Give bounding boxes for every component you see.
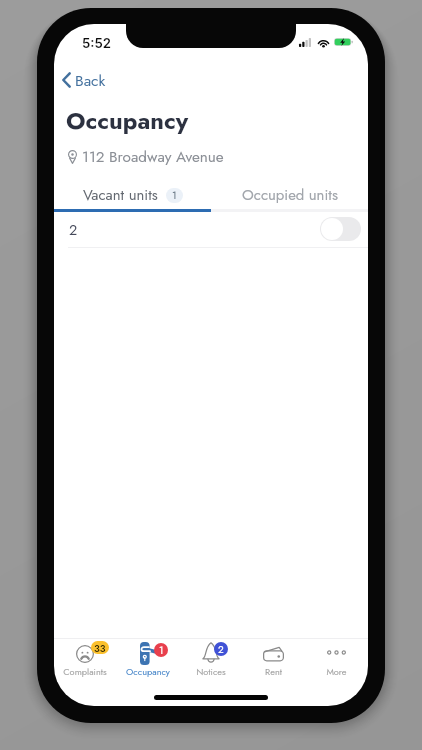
button[interactable]: More	[305, 639, 368, 683]
staticText: Vacant units	[83, 184, 158, 206]
button[interactable]: Occupied units	[211, 181, 368, 209]
button[interactable]: 2	[179, 639, 242, 683]
staticText: Notices	[196, 665, 226, 678]
button[interactable]: 33	[54, 639, 116, 683]
staticText: 33	[94, 641, 106, 654]
button[interactable]: 1	[116, 639, 179, 683]
button[interactable]: Rent	[242, 639, 305, 683]
staticText: Occupancy	[66, 104, 189, 138]
staticText: 1	[159, 643, 164, 657]
staticText: 2	[218, 642, 224, 656]
other: More	[327, 650, 346, 655]
staticText: Occupancy	[126, 665, 170, 678]
staticText: 1	[172, 188, 177, 203]
staticText: Occupied units	[242, 184, 338, 206]
staticText: Rent	[265, 665, 282, 678]
staticText: Back	[75, 69, 106, 91]
staticText: 5:52	[82, 35, 112, 51]
staticText: More	[326, 665, 347, 678]
staticText: 2	[69, 219, 78, 240]
staticText: Complaints	[63, 665, 107, 678]
button[interactable]: Toggle occupancy for unit 2	[320, 217, 361, 241]
button[interactable]: Back	[58, 65, 110, 95]
button[interactable]: 2	[54, 211, 368, 247]
staticText: 112 Broadway Avenue	[82, 146, 224, 168]
button[interactable]: Vacant units	[54, 181, 211, 209]
